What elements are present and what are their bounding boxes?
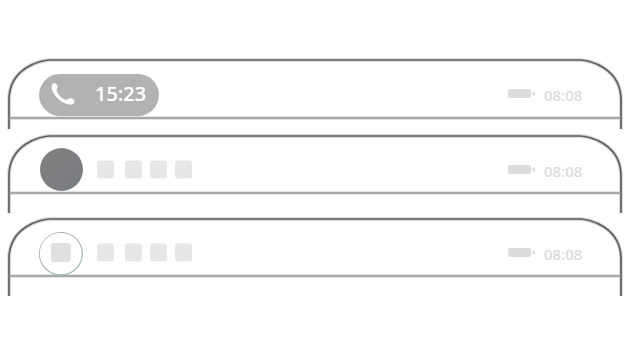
staticText: 08:08: [544, 161, 583, 181]
button[interactable]: Conversation bubble: [40, 148, 83, 191]
button[interactable]: Empty conversation bubble: [39, 232, 83, 276]
staticText: 08:08: [544, 244, 583, 264]
button[interactable]: Return to call, 15:23: [39, 74, 159, 116]
staticText: 08:08: [544, 85, 583, 105]
staticText: 15:23: [95, 80, 147, 107]
